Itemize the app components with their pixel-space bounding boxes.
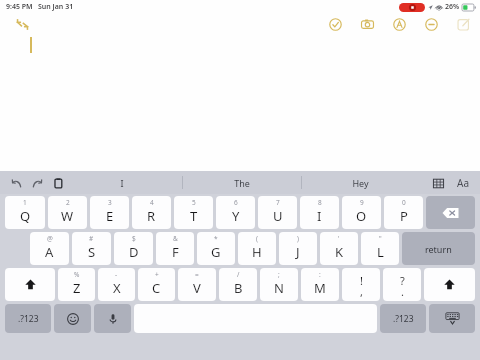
staticText: D [129, 243, 139, 261]
staticText: 2 [66, 198, 70, 207]
button[interactable]: Done [326, 15, 344, 33]
button[interactable]: ; [260, 268, 298, 301]
button[interactable]: 5 [174, 196, 213, 229]
button[interactable]: Hide keyboard [429, 304, 475, 333]
staticText: % [74, 270, 80, 279]
button[interactable]: New note [454, 15, 472, 33]
staticText: / [237, 270, 240, 279]
staticText: L [377, 243, 384, 261]
button[interactable]: Paste [50, 175, 66, 191]
button[interactable]: Collapse [14, 16, 30, 32]
staticText: J [296, 243, 300, 261]
button[interactable]: 3 [90, 196, 129, 229]
staticText: The [234, 177, 250, 189]
staticText: .?123 [393, 313, 414, 325]
staticText: : [319, 270, 321, 279]
staticText: I [317, 207, 322, 225]
button[interactable]: @ [30, 232, 69, 265]
staticText: & [173, 234, 178, 243]
staticText: W [61, 207, 74, 225]
button[interactable]: .?123 [380, 304, 426, 333]
button[interactable]: / [219, 268, 257, 301]
button[interactable]: # [72, 232, 111, 265]
button[interactable]: ? [383, 268, 421, 301]
button[interactable]: Markup [390, 15, 408, 33]
staticText: = [195, 270, 199, 279]
staticText: R [147, 207, 156, 225]
staticText: , [360, 284, 363, 299]
staticText: ' [338, 234, 340, 243]
staticText: 1 [23, 198, 27, 207]
staticText: X [113, 279, 121, 297]
staticText: E [106, 207, 114, 225]
staticText: 7 [276, 198, 280, 207]
button[interactable]: $ [114, 232, 153, 265]
staticText: 26% [445, 2, 460, 12]
button[interactable]: ( [238, 232, 276, 265]
button[interactable]: - [98, 268, 135, 301]
staticText: I [120, 177, 124, 189]
staticText: ! [360, 273, 363, 288]
staticText: Q [20, 207, 31, 225]
button[interactable]: .?123 [5, 304, 51, 333]
button[interactable]: Emoji [54, 304, 91, 333]
button[interactable]: 7 [258, 196, 297, 229]
staticText: . [401, 284, 404, 299]
button[interactable]: 8 [300, 196, 339, 229]
button[interactable]: " [361, 232, 399, 265]
button[interactable]: : [301, 268, 339, 301]
button[interactable]: ' [320, 232, 358, 265]
button[interactable]: 1 [5, 196, 45, 229]
button[interactable]: 6 [216, 196, 255, 229]
staticText: Z [73, 279, 81, 297]
button[interactable]: The [182, 171, 301, 194]
button[interactable]: I [62, 171, 182, 194]
button[interactable]: Undo [8, 175, 24, 191]
staticText: U [273, 207, 283, 225]
staticText: * [214, 234, 218, 243]
button[interactable]: Shift [5, 268, 55, 301]
staticText: 3 [108, 198, 112, 207]
button[interactable]: 2 [48, 196, 87, 229]
button[interactable]: More [422, 15, 440, 33]
staticText: - [115, 270, 118, 279]
staticText: G [211, 243, 221, 261]
button[interactable]: Aa [454, 175, 472, 191]
button[interactable]: return [402, 232, 475, 265]
button[interactable]: Insert table [430, 175, 446, 191]
button[interactable]: = [178, 268, 216, 301]
staticText: M [314, 279, 326, 297]
button[interactable]: Hey [301, 171, 420, 194]
button[interactable]: Camera [358, 15, 376, 33]
button[interactable]: 9 [342, 196, 381, 229]
staticText: C [152, 279, 161, 297]
button[interactable]: % [58, 268, 95, 301]
button[interactable]: ) [279, 232, 317, 265]
staticText: 9 [360, 198, 364, 207]
staticText: S [88, 243, 96, 261]
staticText: T [190, 207, 198, 225]
staticText: 8 [318, 198, 322, 207]
button[interactable]: & [156, 232, 194, 265]
staticText: 9:45 PM [6, 2, 33, 12]
staticText: Aa [457, 176, 469, 190]
button[interactable]: ! [342, 268, 380, 301]
staticText: H [252, 243, 262, 261]
staticText: ) [297, 234, 299, 243]
button[interactable]: Dictation [94, 304, 131, 333]
button[interactable]: 4 [132, 196, 171, 229]
staticText: P [400, 207, 408, 225]
button[interactable]: Redo [29, 175, 45, 191]
button[interactable]: 0 [384, 196, 423, 229]
button[interactable]: Shift [424, 268, 475, 301]
button[interactable]: + [138, 268, 175, 301]
staticText: @ [47, 234, 53, 243]
staticText: + [155, 270, 159, 279]
staticText: V [193, 279, 201, 297]
button[interactable]: Backspace [426, 196, 475, 229]
button[interactable]: * [197, 232, 235, 265]
staticText: A [45, 243, 54, 261]
staticText: 4 [150, 198, 154, 207]
staticText: Sun Jan 31 [38, 2, 74, 12]
